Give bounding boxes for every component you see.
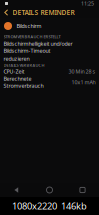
button[interactable]: Home <box>33 187 66 193</box>
staticText: 10x1 mAh <box>71 79 95 86</box>
staticText: CPU-Zeit <box>3 68 24 75</box>
staticText: Bildschirm <box>16 22 41 30</box>
button[interactable]: Back <box>0 187 33 193</box>
staticText: DETAILS VERBRAUCH <box>3 63 44 68</box>
button[interactable]: Recents <box>66 187 99 193</box>
staticText: DETAILS REMINDER <box>12 8 74 17</box>
staticText: 30 Min 28 s <box>68 68 95 75</box>
staticText: Berechnete Stromverbrauch <box>3 75 43 89</box>
staticText: 1080x2220 146kb <box>12 200 87 212</box>
staticText: 11:25 <box>81 0 94 7</box>
button[interactable]: DETAILS REMINDER <box>0 7 99 18</box>
staticText: STROMVERBRAUCH ERSTELLT <box>3 34 60 39</box>
staticText: reduzieren <box>3 55 29 62</box>
staticText: Bildschirmhelligkeit und/oder Bildschirm… <box>3 40 72 54</box>
